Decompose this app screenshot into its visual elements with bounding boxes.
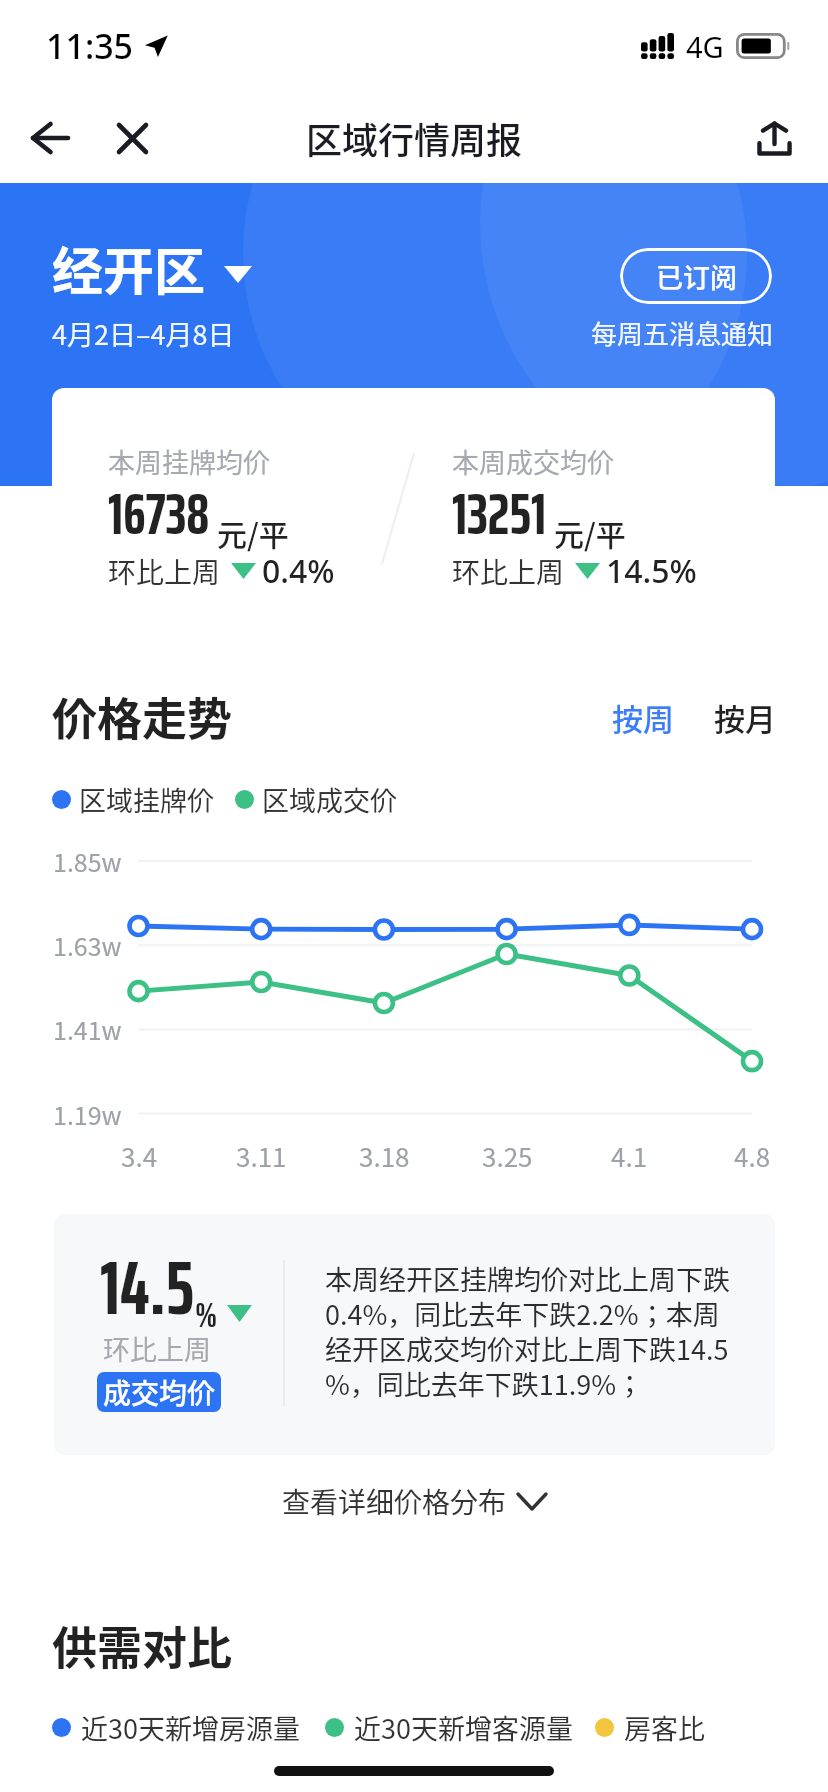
staticText: 按周 bbox=[612, 695, 674, 740]
staticText: 近30天新增客源量 bbox=[354, 1708, 573, 1747]
staticText: 4.8 bbox=[734, 1137, 771, 1175]
staticText: 区域挂牌价 bbox=[79, 780, 214, 819]
staticText: 查看详细价格分布 bbox=[282, 1481, 507, 1522]
staticText: 3.11 bbox=[236, 1137, 287, 1175]
staticText: 14.5% bbox=[606, 549, 697, 593]
staticText: 16738 bbox=[108, 469, 210, 559]
staticText: 4G bbox=[686, 27, 724, 66]
staticText: 1.85w bbox=[53, 843, 122, 879]
staticText: 元/平 bbox=[217, 511, 289, 554]
staticText: 0.4% bbox=[262, 549, 335, 593]
staticText: 本周成交均价 bbox=[452, 442, 614, 481]
button[interactable]: Close bbox=[97, 103, 167, 173]
staticText: 房客比 bbox=[624, 1708, 705, 1747]
staticText: 14.5 bbox=[100, 1229, 195, 1347]
staticText: 区域行情周报 bbox=[306, 112, 523, 164]
staticText: 1.19w bbox=[53, 1096, 122, 1132]
staticText: 近30天新增房源量 bbox=[81, 1708, 300, 1747]
staticText: 区域成交价 bbox=[262, 780, 397, 819]
staticText: 供需对比 bbox=[52, 1613, 233, 1678]
staticText: 3.18 bbox=[359, 1137, 410, 1175]
button[interactable]: Share bbox=[737, 102, 811, 176]
staticText: 4.1 bbox=[611, 1137, 648, 1175]
staticText: 1.63w bbox=[53, 927, 122, 963]
staticText: 价格走势 bbox=[52, 684, 233, 749]
staticText: 按月 bbox=[714, 695, 776, 740]
staticText: 已订阅 bbox=[656, 257, 737, 296]
staticText: 本周经开区挂牌均价对比上周下跌 0.4%，同比去年下跌2.2%；本周 经开区成交… bbox=[325, 1259, 730, 1403]
staticText: 3.4 bbox=[121, 1137, 158, 1175]
staticText: 13251 bbox=[452, 469, 547, 559]
button[interactable]: Back bbox=[11, 103, 89, 173]
staticText: 成交均价 bbox=[103, 1372, 216, 1412]
button[interactable]: 按月 bbox=[714, 695, 776, 740]
staticText: 环比上周 bbox=[103, 1329, 211, 1368]
button[interactable]: 成交均价 bbox=[97, 1372, 221, 1412]
staticText: 1.41w bbox=[53, 1011, 122, 1047]
staticText: 4月2日–4月8日 bbox=[52, 314, 235, 353]
staticText: 3.25 bbox=[482, 1137, 533, 1175]
staticText: % bbox=[195, 1288, 218, 1342]
staticText: 环比上周 bbox=[452, 551, 565, 592]
staticText: 11:35 bbox=[46, 23, 134, 69]
button[interactable]: 查看详细价格分布 bbox=[0, 1470, 828, 1532]
button[interactable]: 按周 bbox=[612, 695, 674, 740]
staticText: 本周挂牌均价 bbox=[108, 442, 270, 481]
staticText: 每周五消息通知 bbox=[591, 314, 774, 352]
staticText: 经开区 bbox=[52, 231, 206, 305]
staticText: 环比上周 bbox=[108, 551, 221, 592]
staticText: 元/平 bbox=[554, 511, 626, 554]
button[interactable]: 已订阅 bbox=[620, 248, 772, 304]
